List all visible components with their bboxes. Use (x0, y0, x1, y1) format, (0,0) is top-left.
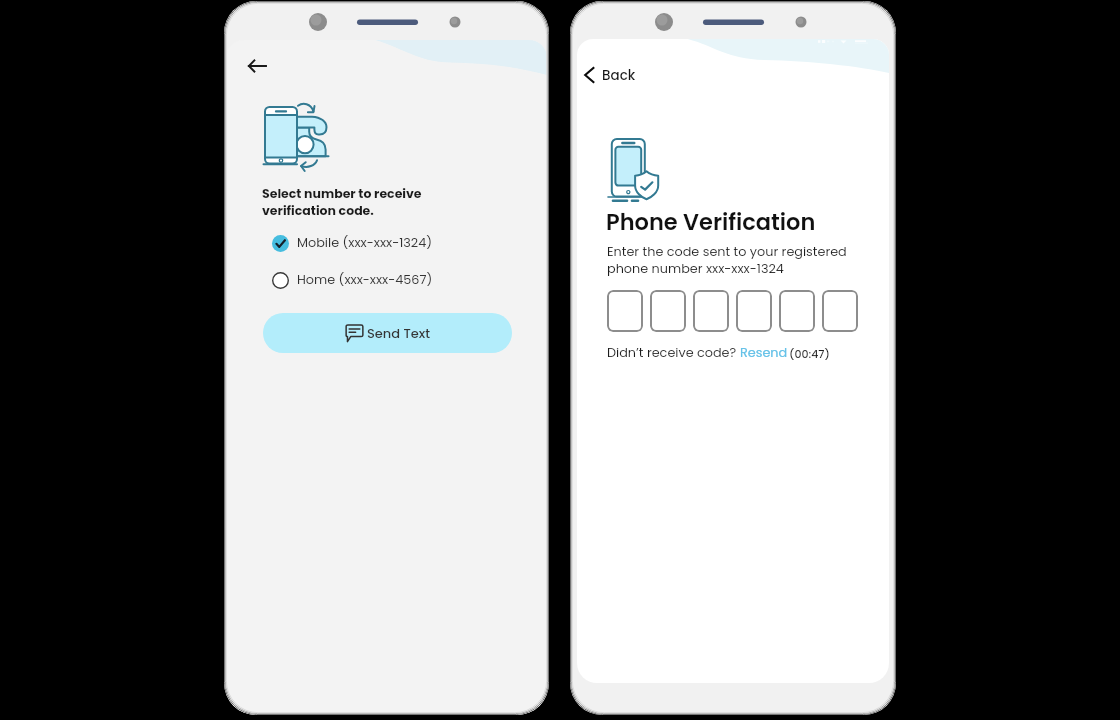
button[interactable]: Resend (740, 344, 788, 362)
staticText: Enter the code sent to your registered p… (607, 243, 847, 277)
button[interactable] (693, 290, 729, 332)
button[interactable]: Back (579, 61, 636, 89)
button[interactable] (822, 290, 858, 332)
staticText: (00:47) (789, 346, 830, 361)
staticText: Didn’t receive code? (607, 344, 740, 362)
staticText: Send Text (367, 324, 431, 342)
button[interactable]: Home (xxx-xxx-4567) (272, 271, 433, 289)
button[interactable] (650, 290, 686, 332)
button[interactable]: Mobile (xxx-xxx-1324) (272, 234, 433, 252)
staticText: Phone Verification (606, 206, 816, 237)
staticText: Mobile (xxx-xxx-1324) (297, 234, 433, 252)
button[interactable] (779, 290, 815, 332)
button[interactable]: Back (241, 50, 273, 82)
staticText: Select number to receive verification co… (262, 185, 422, 219)
button[interactable]: Send Text (263, 313, 512, 353)
staticText: Home (xxx-xxx-4567) (297, 271, 433, 289)
staticText: Back (602, 66, 636, 85)
button[interactable] (736, 290, 772, 332)
button[interactable] (607, 290, 643, 332)
